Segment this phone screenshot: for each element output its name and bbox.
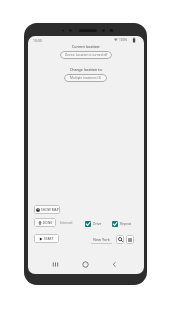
staticText: New York: [93, 237, 110, 242]
staticText: Interval: [60, 220, 73, 225]
staticText: SHOW MAP: [41, 208, 59, 212]
staticText: Current location:: [72, 44, 101, 49]
button[interactable]: New York: [91, 236, 112, 243]
button[interactable]: Repeat: [112, 220, 131, 227]
button[interactable]: DONE: [34, 218, 56, 227]
button[interactable]: Multiple locations (3): [64, 74, 107, 82]
staticText: Change location to:: [70, 67, 103, 72]
staticText: START: [44, 237, 54, 241]
staticText: Drive: [93, 221, 102, 226]
button[interactable]: SHOW MAP: [34, 205, 60, 214]
staticText: 10:00: [33, 38, 42, 43]
button[interactable]: START: [34, 234, 59, 243]
button[interactable]: [126, 235, 134, 244]
staticText: Device Location is turned off: [65, 53, 108, 57]
staticText: 100%: [119, 38, 128, 42]
button[interactable]: [49, 258, 62, 271]
button[interactable]: [108, 258, 121, 271]
button[interactable]: [116, 235, 124, 244]
staticText: Multiple locations (3): [70, 76, 102, 80]
staticText: DONE: [43, 221, 53, 225]
staticText: Repeat: [120, 221, 131, 226]
button[interactable]: Device Location is turned off: [60, 51, 112, 59]
button[interactable]: [79, 258, 92, 271]
button[interactable]: Drive: [85, 220, 102, 227]
